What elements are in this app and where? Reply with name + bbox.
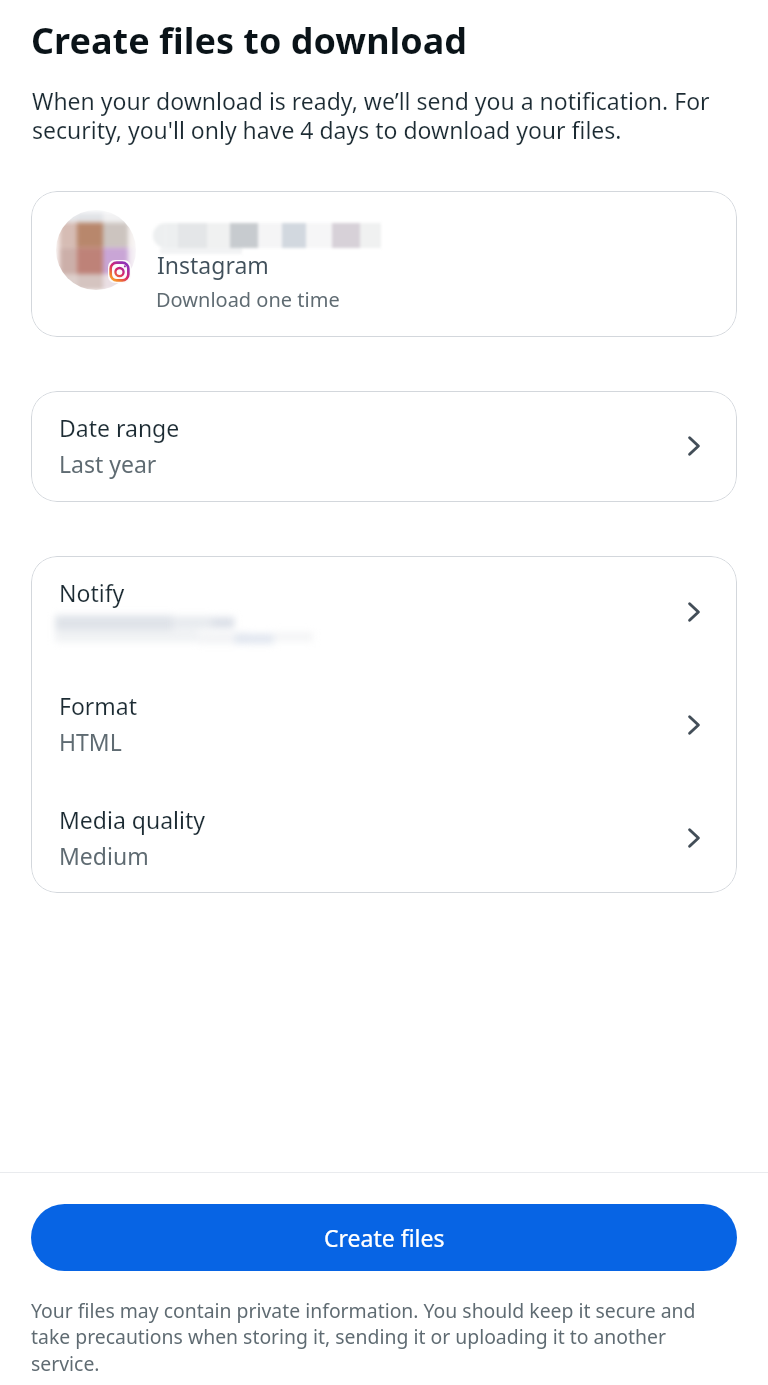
button[interactable]: Media quality	[31, 781, 737, 893]
staticText: Create files	[324, 1222, 445, 1253]
staticText: Notify	[59, 577, 125, 608]
button[interactable]: Instagram account	[31, 191, 737, 337]
staticText: Download one time	[156, 286, 340, 313]
staticText: Medium	[59, 840, 149, 871]
staticText: Last year	[59, 448, 157, 479]
staticText: When your download is ready, we’ll send …	[32, 85, 742, 146]
button[interactable]: Create files	[31, 1204, 737, 1271]
staticText: Media quality	[59, 804, 205, 835]
staticText: Create files to download	[31, 16, 468, 65]
button[interactable]: Date range	[31, 391, 737, 502]
staticText: HTML	[59, 726, 122, 757]
staticText: Date range	[59, 412, 180, 443]
staticText: Format	[59, 690, 138, 721]
button[interactable]: Format	[31, 668, 737, 781]
button[interactable]: Notify	[31, 556, 737, 668]
staticText: Instagram	[157, 249, 269, 280]
staticText: Your files may contain private informati…	[31, 1297, 731, 1376]
button[interactable]: Instagram account	[56, 210, 136, 290]
